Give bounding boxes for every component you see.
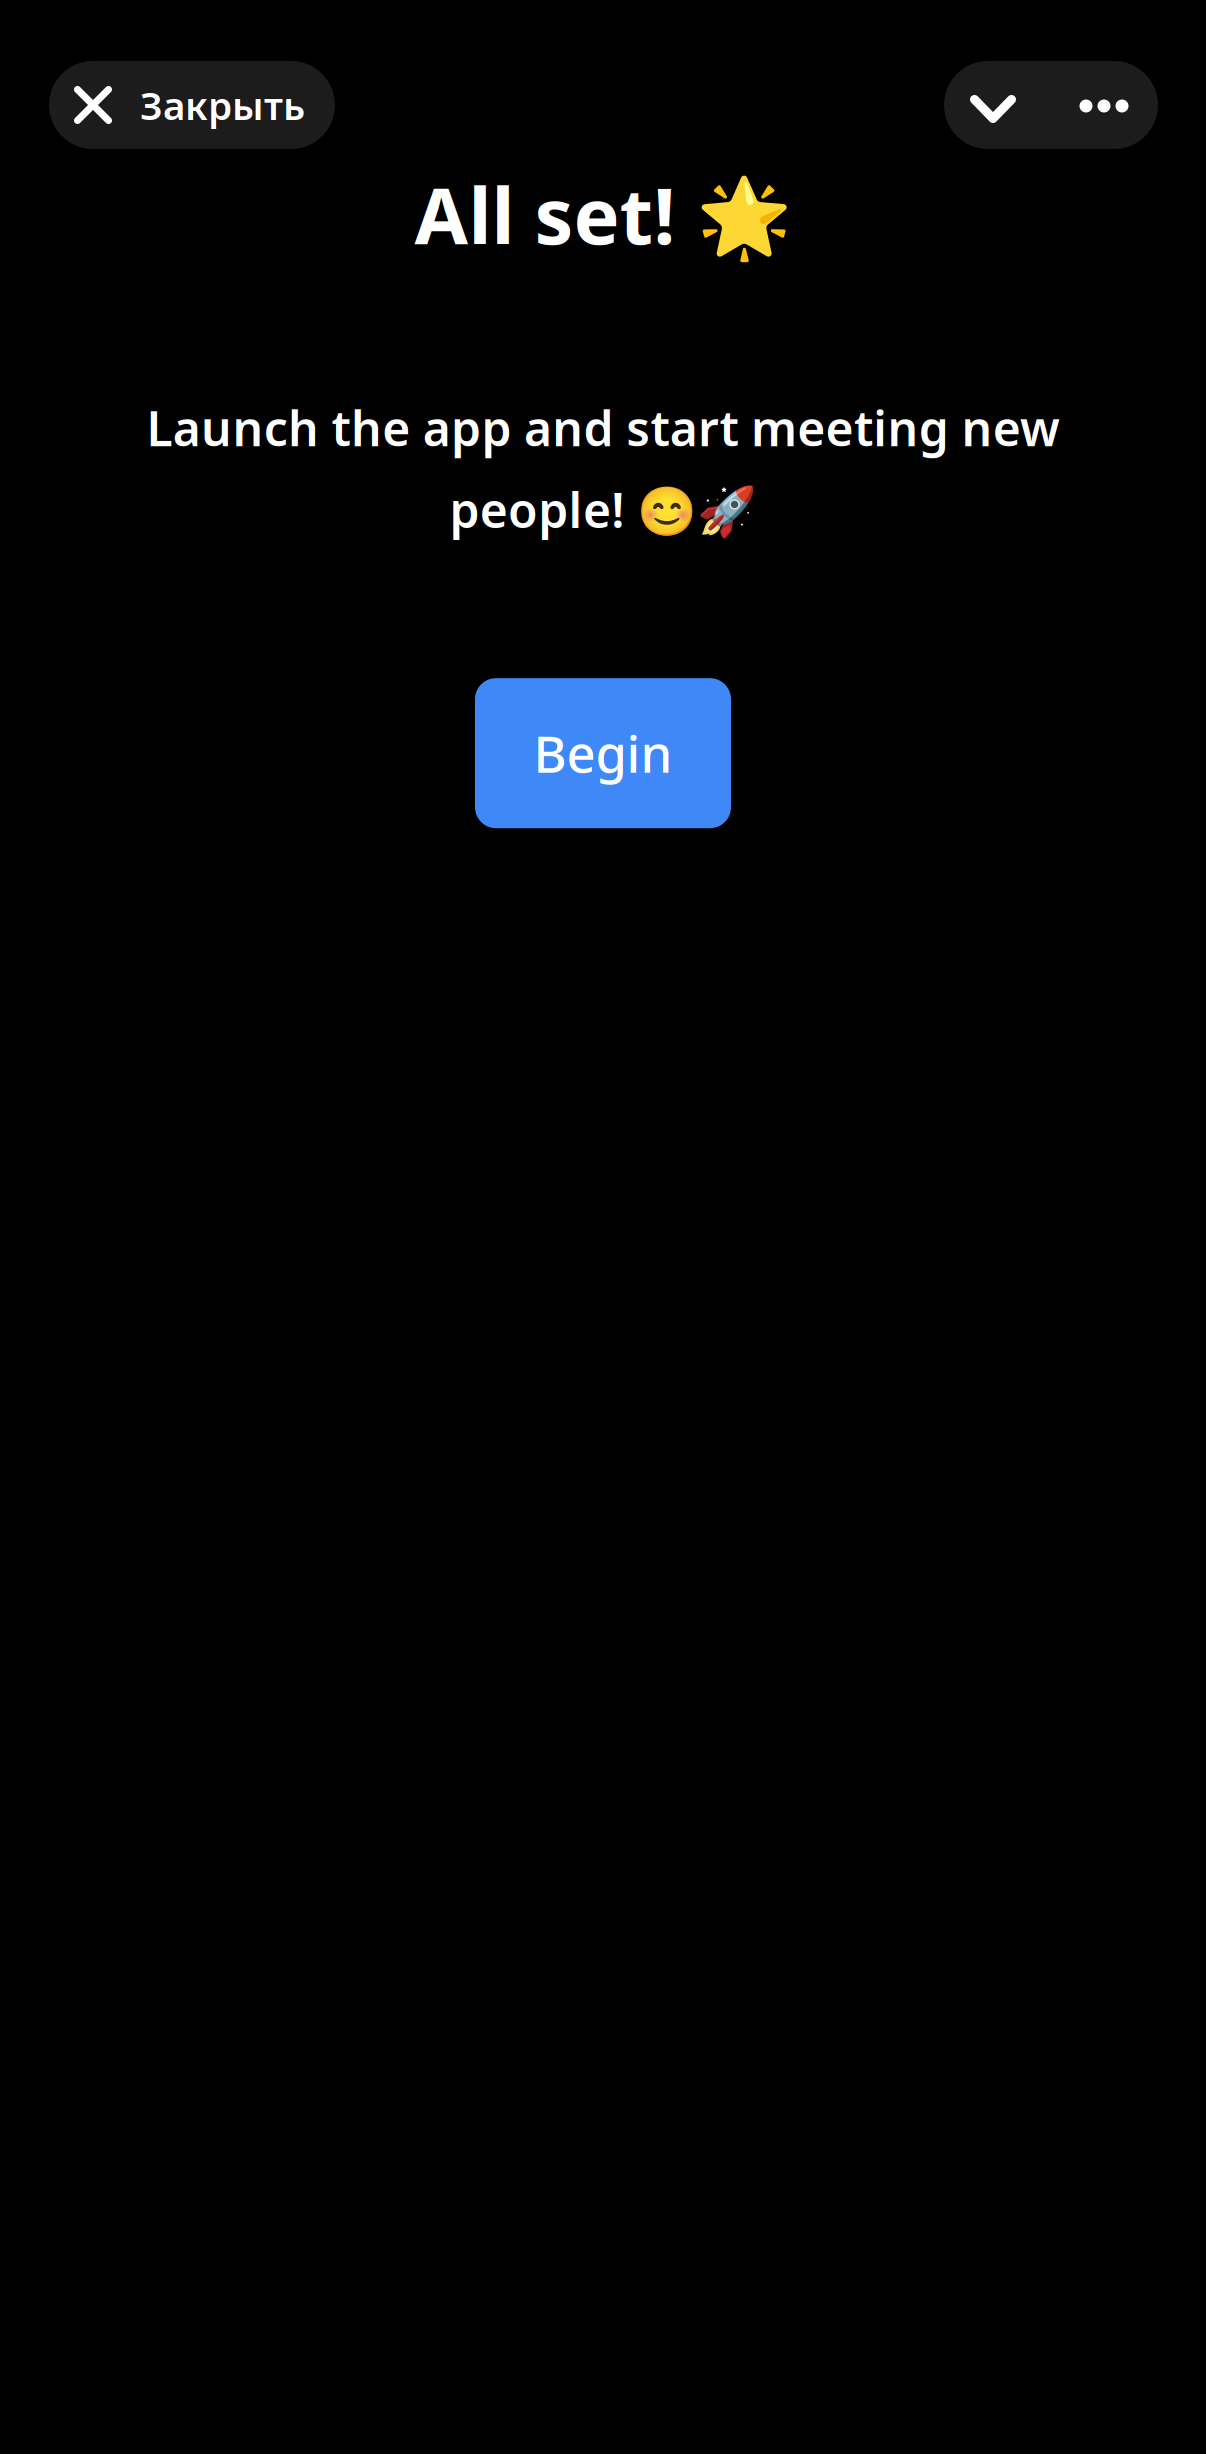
button[interactable]: Begin <box>475 678 731 828</box>
staticText: Launch the app and start meeting new peo… <box>146 396 1060 541</box>
button[interactable]: More options <box>1042 61 1158 149</box>
button[interactable]: Collapse <box>944 61 1042 149</box>
staticText: All set! 🌟 <box>414 163 791 266</box>
staticText: Закрыть <box>140 79 305 131</box>
staticText: Begin <box>533 719 672 787</box>
button[interactable]: Закрыть <box>49 61 335 149</box>
